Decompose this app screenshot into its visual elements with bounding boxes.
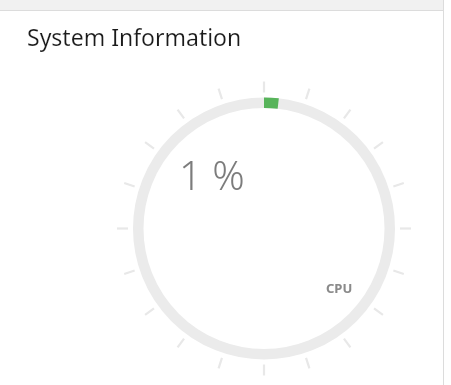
- staticText: 1 %: [179, 147, 245, 201]
- staticText: System Information: [27, 21, 242, 52]
- button[interactable]: System Information: [27, 21, 242, 52]
- button[interactable]: CPU usage gauge, 1 percent: [108, 73, 420, 385]
- staticText: CPU: [326, 279, 353, 297]
